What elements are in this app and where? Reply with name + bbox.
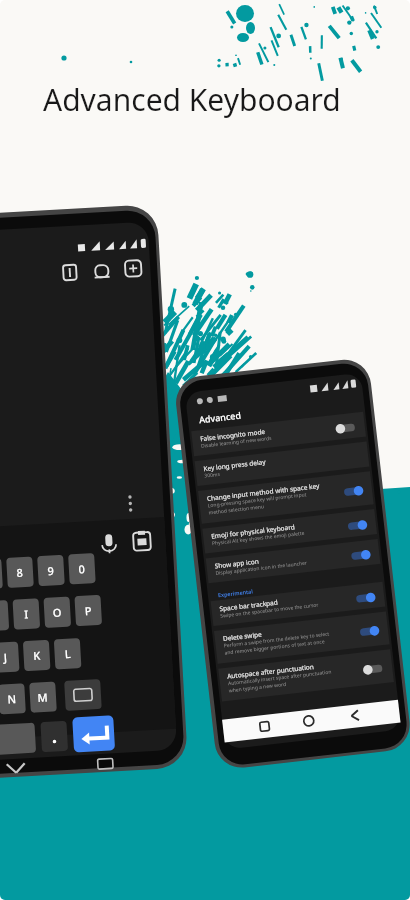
- button[interactable]: Advanced Keybooard app preview: [0, 0, 410, 900]
